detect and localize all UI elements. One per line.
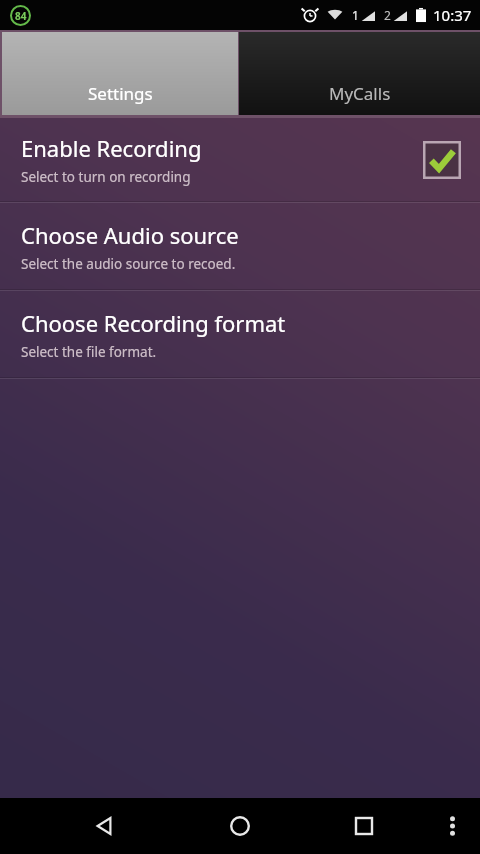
button[interactable]: MyCalls bbox=[239, 32, 480, 115]
button[interactable]: Choose Audio source bbox=[0, 203, 480, 289]
button[interactable]: Enable Recording bbox=[0, 118, 480, 201]
staticText: Select the file format. bbox=[21, 343, 157, 361]
button[interactable]: Settings bbox=[2, 32, 238, 115]
staticText: 2 bbox=[384, 7, 391, 23]
button[interactable]: Enable Recording checkbox bbox=[422, 140, 462, 180]
button[interactable]: Back bbox=[80, 802, 128, 850]
staticText: 84 bbox=[15, 9, 27, 23]
staticText: Select the audio source to recoed. bbox=[21, 255, 236, 273]
staticText: 10:37 bbox=[433, 5, 472, 25]
staticText: 1 bbox=[352, 7, 359, 23]
button[interactable]: Choose Recording format bbox=[0, 291, 480, 377]
staticText: MyCalls bbox=[329, 82, 391, 105]
staticText: Choose Recording format bbox=[21, 308, 286, 338]
staticText: Choose Audio source bbox=[21, 220, 239, 250]
staticText: Select to turn on recording bbox=[21, 168, 191, 186]
staticText: Settings bbox=[88, 82, 153, 105]
button[interactable]: More options bbox=[430, 804, 474, 848]
button[interactable]: Home bbox=[216, 802, 264, 850]
button[interactable]: Recent apps bbox=[340, 802, 388, 850]
staticText: Enable Recording bbox=[21, 133, 202, 163]
